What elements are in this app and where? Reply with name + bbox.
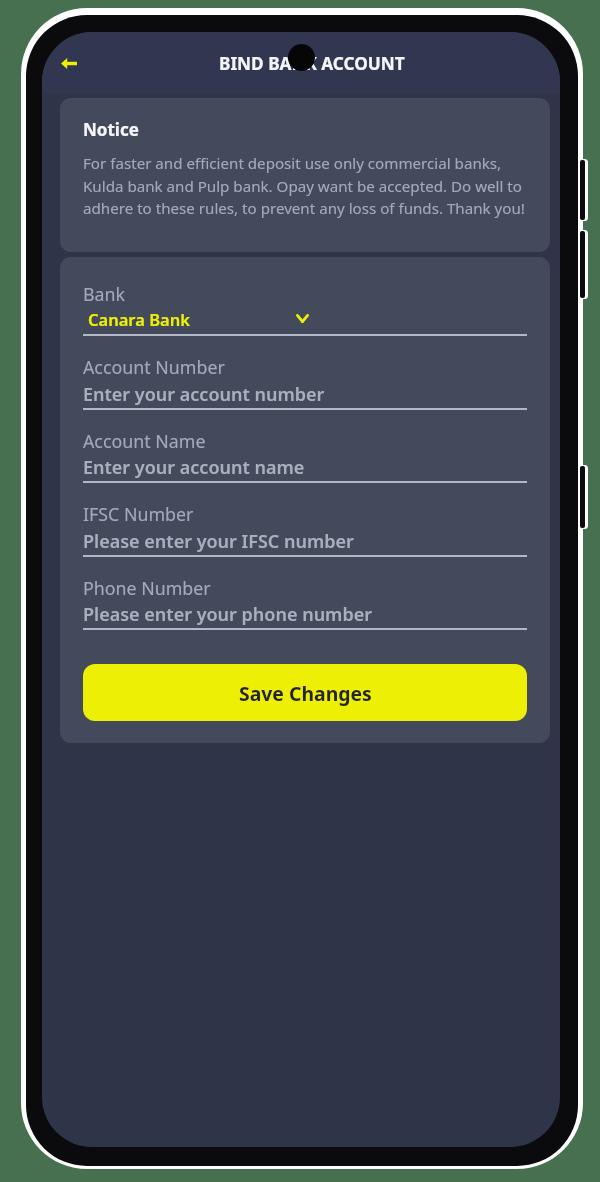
staticText: Canara Bank xyxy=(88,308,190,330)
staticText: Notice xyxy=(83,118,139,141)
staticText: Account Name xyxy=(83,429,206,453)
staticText: For faster and efficient deposit use onl… xyxy=(83,153,531,218)
staticText: Bank xyxy=(83,282,126,306)
button[interactable]: Enter your account number xyxy=(83,382,527,407)
button[interactable]: Back xyxy=(47,43,91,83)
button[interactable]: Save Changes xyxy=(83,664,527,721)
staticText: IFSC Number xyxy=(83,502,194,526)
staticText: Phone Number xyxy=(83,576,211,600)
staticText: Save Changes xyxy=(239,680,372,706)
button[interactable]: Canara Bank xyxy=(83,305,333,335)
staticText: Account Number xyxy=(83,355,225,379)
staticText: BIND BANK ACCOUNT xyxy=(219,52,405,75)
button[interactable]: Enter your account name xyxy=(83,455,527,480)
button[interactable]: Please enter your IFSC number xyxy=(83,529,527,554)
button[interactable]: Please enter your phone number xyxy=(83,602,527,627)
